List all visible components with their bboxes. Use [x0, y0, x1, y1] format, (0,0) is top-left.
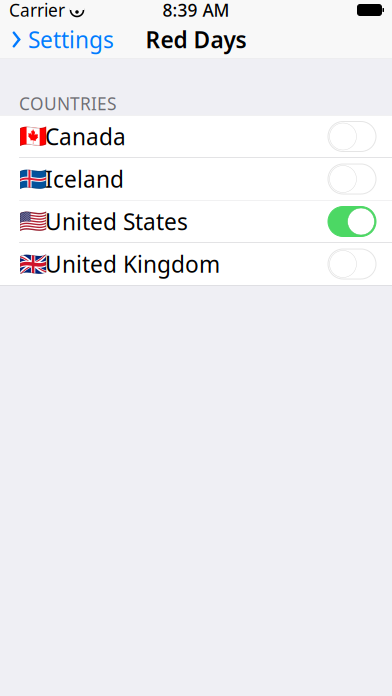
- staticText: 🇨🇦: [19, 124, 47, 149]
- staticText: Carrier: [9, 0, 65, 21]
- button[interactable]: 🇮🇸: [0, 158, 392, 200]
- staticText: United States: [45, 206, 188, 236]
- staticText: 🇮🇸: [19, 166, 47, 192]
- button[interactable]: 🇬🇧: [0, 243, 392, 285]
- staticText: Iceland: [45, 164, 124, 194]
- button[interactable]: 🇨🇦: [0, 115, 392, 158]
- staticText: 🇺🇸: [19, 209, 47, 234]
- button[interactable]: 🇺🇸: [0, 200, 392, 243]
- staticText: COUNTRIES: [19, 92, 117, 115]
- staticText: 🇬🇧: [19, 251, 47, 277]
- staticText: United Kingdom: [45, 249, 220, 279]
- staticText: Settings: [28, 24, 114, 54]
- staticText: Canada: [45, 121, 126, 151]
- button[interactable]: Settings: [0, 20, 122, 58]
- staticText: 8:39 AM: [162, 0, 229, 21]
- staticText: Red Days: [145, 24, 246, 54]
